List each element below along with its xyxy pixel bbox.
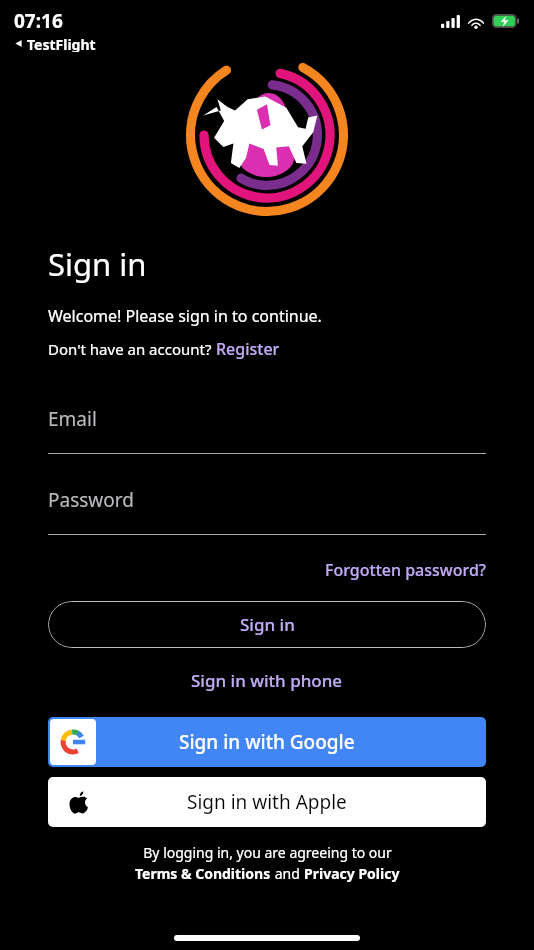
- button[interactable]: Terms & Conditions: [135, 864, 271, 883]
- staticText: Sign in: [48, 243, 147, 285]
- button[interactable]: Sign in: [48, 601, 486, 648]
- button[interactable]: Password: [48, 487, 486, 535]
- staticText: 07:16: [14, 8, 63, 34]
- staticText: Sign in with Apple: [187, 789, 347, 815]
- button[interactable]: Sign in with Google: [48, 717, 486, 767]
- button[interactable]: Privacy Policy: [304, 864, 400, 883]
- staticText: By logging in, you are agreeing to our: [143, 843, 392, 862]
- staticText: Welcome! Please sign in to continue.: [48, 305, 322, 327]
- staticText: Don't have an account?: [48, 339, 216, 359]
- button[interactable]: Email: [48, 406, 486, 454]
- staticText: and: [271, 864, 304, 883]
- staticText: Forgotten password?: [325, 559, 486, 581]
- staticText: TestFlight: [27, 35, 96, 52]
- staticText: Sign in with phone: [191, 669, 343, 692]
- staticText: Email: [48, 406, 97, 432]
- button[interactable]: Sign in with Apple: [48, 777, 486, 827]
- staticText: Sign in: [240, 613, 295, 636]
- staticText: Register: [216, 338, 280, 360]
- button[interactable]: Forgotten password?: [325, 557, 486, 583]
- staticText: Password: [48, 487, 134, 513]
- button[interactable]: Sign in with phone: [191, 666, 343, 695]
- staticText: Sign in with Google: [179, 729, 355, 755]
- button[interactable]: Register: [216, 338, 280, 360]
